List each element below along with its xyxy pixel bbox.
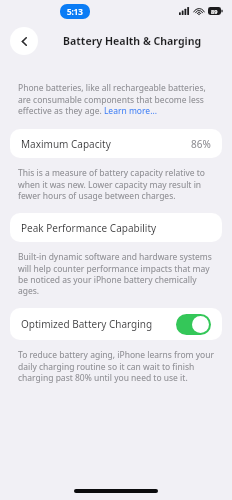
staticText: To reduce battery aging, iPhone learns f… [18, 349, 214, 384]
staticText: Battery Health & Charging [63, 34, 202, 48]
staticText: Peak Performance Capability [21, 221, 157, 235]
staticText: Built-in dynamic software and hardware s… [18, 251, 214, 297]
button[interactable]: Maximum Capacity [10, 129, 222, 158]
button[interactable]: Back [10, 27, 38, 55]
staticText: 86% [191, 137, 211, 151]
staticText: Phone batteries, like all rechargeable b… [18, 82, 214, 117]
staticText: 5:13 [67, 6, 83, 17]
staticText: 89 [211, 8, 218, 15]
button[interactable]: Peak Performance Capability [10, 213, 222, 242]
staticText: This is a measure of battery capacity re… [18, 167, 214, 202]
button[interactable]: Optimized Battery Charging [10, 308, 222, 340]
button[interactable]: Optimized Battery Charging, on [176, 314, 211, 335]
staticText: Optimized Battery Charging [21, 317, 153, 331]
staticText: Maximum Capacity [21, 137, 111, 151]
